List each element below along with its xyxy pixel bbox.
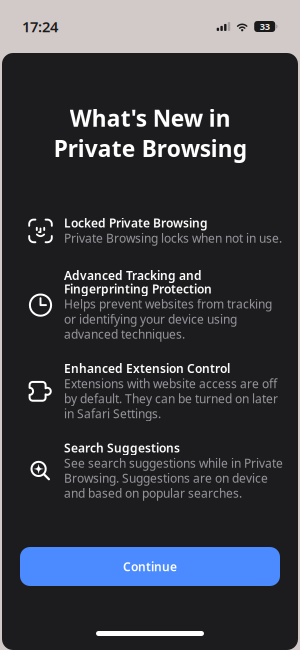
staticText: Advanced Tracking and Fingerprinting Pro…	[64, 269, 212, 295]
staticText: Private Browsing locks when not in use.	[64, 231, 282, 246]
staticText: Continue	[123, 558, 177, 574]
staticText: Search Suggestions	[64, 441, 180, 454]
staticText: 17:24	[22, 17, 58, 36]
staticText: Enhanced Extension Control	[64, 362, 230, 375]
staticText: See search suggestions while in Private …	[64, 455, 283, 501]
staticText: Helps prevent websites from tracking or …	[64, 296, 272, 341]
button[interactable]: Continue	[20, 547, 280, 586]
staticText: 33	[260, 20, 270, 33]
staticText: Extensions with website access are off b…	[64, 376, 278, 421]
staticText: Locked Private Browsing	[64, 216, 208, 230]
staticText: What's New in Private Browsing	[53, 103, 246, 163]
